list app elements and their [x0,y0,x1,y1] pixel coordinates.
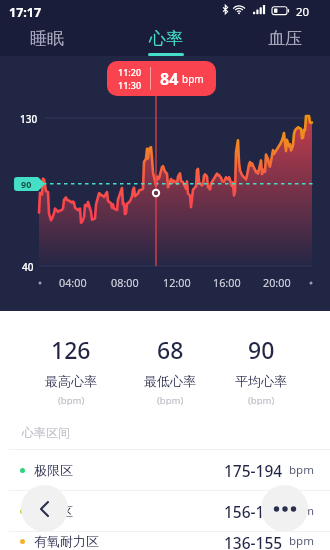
button[interactable]: More options [261,485,308,532]
staticText: 40 [22,260,34,274]
staticText: 20 [296,4,310,20]
staticText: 20:00 [263,275,291,290]
staticText: 90 [248,334,275,365]
staticText: 175-194 [224,460,283,481]
staticText: 136-155 [224,532,283,550]
staticText: (bpm) [248,394,275,405]
staticText: bpm [289,533,314,549]
staticText: 11:30 [118,79,142,91]
button[interactable]: 睡眠 [8,28,86,62]
staticText: 130 [20,112,38,126]
button[interactable]: 血压 [246,28,324,62]
staticText: 极限区 [34,462,73,478]
staticText: bpm [289,462,314,478]
staticText: (bpm) [58,394,85,405]
staticText: 84 [160,68,179,90]
staticText: 12:00 [163,275,191,290]
staticText: 11:20 [118,66,142,78]
staticText: 平均心率 [235,373,287,389]
staticText: 16:00 [213,275,241,290]
staticText: bpm [182,72,204,86]
staticText: 最低心率 [144,373,196,389]
staticText: 睡眠 [30,28,64,49]
button[interactable]: 耐力区 [0,491,330,531]
staticText: 17:17 [9,4,42,21]
staticText: 08:00 [111,275,139,290]
button[interactable]: Back [21,485,68,532]
staticText: 心率 [149,28,183,49]
staticText: 156-174 [224,501,283,522]
staticText: 90 [21,178,32,190]
button[interactable]: 有氧耐力区 [0,532,330,550]
button[interactable]: 心率 [127,28,205,62]
staticText: 血压 [268,28,302,49]
staticText: 04:00 [59,275,87,290]
staticText: 耐力区 [34,503,73,519]
staticText: bpm [289,503,314,519]
button[interactable]: 极限区 [0,450,330,490]
staticText: 心率区间 [22,425,70,440]
staticText: 68 [157,334,184,365]
staticText: (bpm) [157,394,184,405]
staticText: 最高心率 [45,373,97,389]
staticText: 有氧耐力区 [34,533,99,549]
staticText: 126 [51,334,91,365]
